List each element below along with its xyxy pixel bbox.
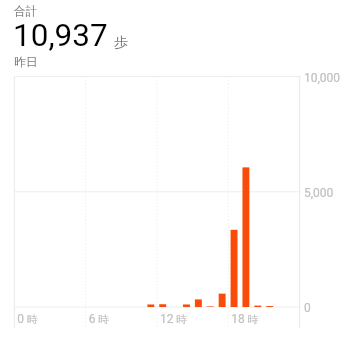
staticText: 10,937 <box>13 17 108 54</box>
other: Hourly step count chart <box>0 0 349 349</box>
staticText: 昨日 <box>14 55 38 70</box>
staticText: 歩 <box>114 34 128 52</box>
staticText: 合計 <box>14 4 38 19</box>
button[interactable]: Hourly step count chart <box>0 0 349 349</box>
